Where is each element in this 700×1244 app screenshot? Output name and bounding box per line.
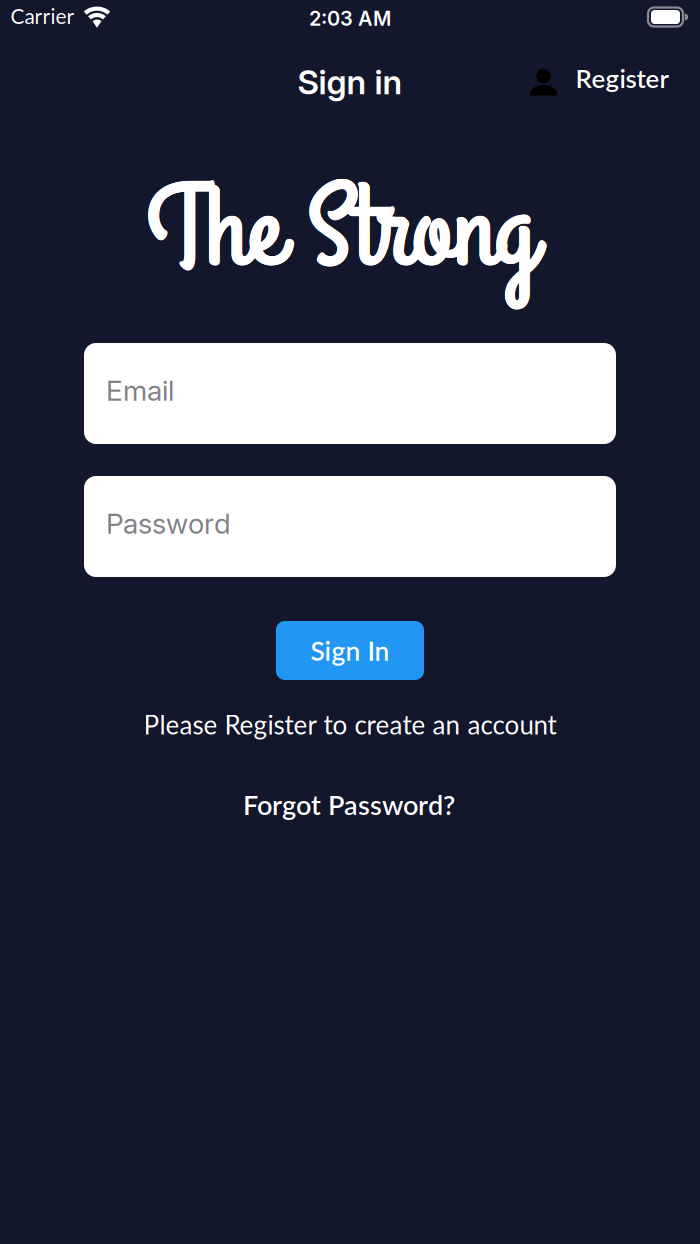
staticText: The Strong: [146, 152, 534, 308]
button[interactable]: Forgot Password?: [243, 788, 455, 821]
button[interactable]: Email: [84, 343, 616, 444]
staticText: Forgot Password?: [243, 788, 455, 821]
staticText: Please Register to create an account: [143, 709, 556, 740]
staticText: Email: [106, 374, 174, 407]
button[interactable]: Register: [528, 65, 669, 96]
staticText: The Strong: [147, 152, 535, 308]
button[interactable]: Sign In: [276, 621, 424, 680]
staticText: Sign In: [310, 635, 389, 666]
staticText: The Strong: [147, 154, 535, 310]
staticText: 2:03 AM: [309, 6, 391, 31]
staticText: Register: [575, 62, 669, 93]
button[interactable]: Password: [84, 476, 616, 577]
staticText: The Strong: [148, 153, 536, 309]
staticText: The Strong: [146, 153, 534, 309]
staticText: The Strong: [146, 154, 534, 310]
staticText: The Strong: [147, 153, 535, 309]
staticText: The Strong: [148, 154, 536, 310]
staticText: Password: [106, 507, 231, 540]
staticText: Carrier: [10, 3, 74, 28]
staticText: Sign in: [297, 62, 402, 102]
staticText: The Strong: [148, 152, 536, 308]
